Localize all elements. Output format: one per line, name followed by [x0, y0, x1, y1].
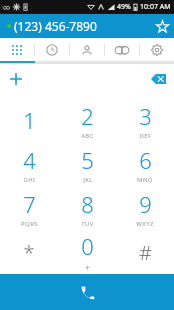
staticText: +: [85, 262, 90, 273]
button[interactable]: Backspace: [145, 66, 171, 92]
button[interactable]: Voicemail: [105, 38, 139, 61]
staticText: 10:07 AM: [140, 2, 171, 12]
button[interactable]: Call: [0, 274, 174, 310]
staticText: TUV: [81, 220, 94, 228]
staticText: 8: [81, 189, 94, 219]
button[interactable]: 0: [58, 230, 116, 274]
button[interactable]: 2: [58, 98, 116, 142]
button[interactable]: Contacts: [70, 38, 104, 61]
staticText: 9: [139, 189, 152, 219]
button[interactable]: Settings: [140, 38, 174, 61]
button[interactable]: 1: [0, 98, 58, 142]
staticText: PQRS: [21, 220, 38, 228]
button[interactable]: 3: [116, 98, 174, 142]
staticText: *: [23, 239, 35, 266]
staticText: MNO: [137, 176, 153, 184]
button[interactable]: Add to favorites: [150, 14, 174, 38]
staticText: #: [139, 239, 152, 266]
button[interactable]: 5: [58, 142, 116, 186]
staticText: 7: [23, 189, 36, 219]
staticText: 1: [23, 105, 36, 135]
staticText: 49%: [117, 2, 131, 12]
staticText: 0: [81, 231, 94, 261]
button[interactable]: Call history: [35, 38, 69, 61]
button[interactable]: 6: [116, 142, 174, 186]
button[interactable]: 4: [0, 142, 58, 186]
staticText: 3: [139, 101, 152, 131]
staticText: (123) 456-7890: [14, 18, 97, 34]
staticText: WXYZ: [136, 220, 154, 228]
button[interactable]: 9: [116, 186, 174, 230]
button[interactable]: 8: [58, 186, 116, 230]
button[interactable]: 7: [0, 186, 58, 230]
staticText: 4: [23, 145, 36, 175]
staticText: JKL: [83, 176, 93, 184]
staticText: 5: [81, 145, 94, 175]
staticText: 6: [139, 145, 152, 175]
staticText: ABC: [81, 132, 94, 140]
button[interactable]: Dialpad: [0, 38, 34, 61]
staticText: 2: [81, 101, 94, 131]
button[interactable]: #: [116, 230, 174, 274]
button[interactable]: *: [0, 230, 58, 274]
staticText: GHI: [23, 176, 36, 184]
button[interactable]: Add contact: [2, 65, 30, 93]
staticText: DEF: [139, 132, 152, 140]
